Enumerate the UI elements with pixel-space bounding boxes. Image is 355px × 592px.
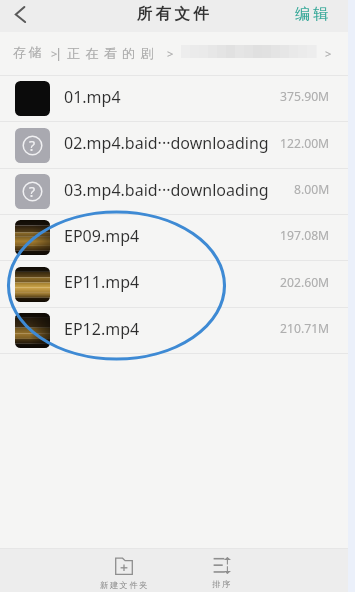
button[interactable]: New folder <box>92 549 156 592</box>
button[interactable]: Sort <box>190 549 254 592</box>
staticText: 编辑 <box>295 5 332 24</box>
staticText: 02.mp4.baid···downloading <box>64 132 280 154</box>
staticText: EP12.mp4 <box>64 318 280 340</box>
staticText: 210.71M <box>280 320 330 337</box>
button[interactable]: EP09.mp4 <box>0 215 348 260</box>
staticText: 排序 <box>212 579 232 589</box>
staticText: ? <box>29 182 36 201</box>
staticText: 202.60M <box>280 274 330 291</box>
staticText: EP09.mp4 <box>64 225 280 247</box>
staticText: > <box>51 46 58 61</box>
staticText: > <box>325 46 332 61</box>
staticText: 197.08M <box>280 227 330 244</box>
other: New folder <box>115 557 133 575</box>
staticText: 03.mp4.baid···downloading <box>64 179 294 201</box>
button[interactable]: |正在看的剧 <box>55 44 159 62</box>
button[interactable]: EP12.mp4 <box>0 308 348 353</box>
button[interactable]: 01.mp4 <box>0 76 348 121</box>
button[interactable]: 存储 <box>13 44 45 60</box>
staticText: 8.00M <box>294 181 330 198</box>
staticText: 122.00M <box>280 135 330 152</box>
staticText: > <box>167 46 174 61</box>
staticText: ? <box>29 136 36 155</box>
button[interactable]: EP11.mp4 <box>0 261 348 307</box>
staticText: 新建文件夹 <box>100 580 149 590</box>
staticText: 所有文件 <box>137 4 212 24</box>
button[interactable]: ? <box>0 169 348 214</box>
staticText: EP11.mp4 <box>64 271 280 293</box>
staticText: 375.90M <box>280 88 330 105</box>
staticText: 01.mp4 <box>64 86 280 108</box>
button[interactable]: Back <box>0 0 36 32</box>
other: Sort <box>213 557 231 574</box>
button[interactable]: 编辑 <box>295 7 332 26</box>
button[interactable]: ? <box>0 122 348 168</box>
